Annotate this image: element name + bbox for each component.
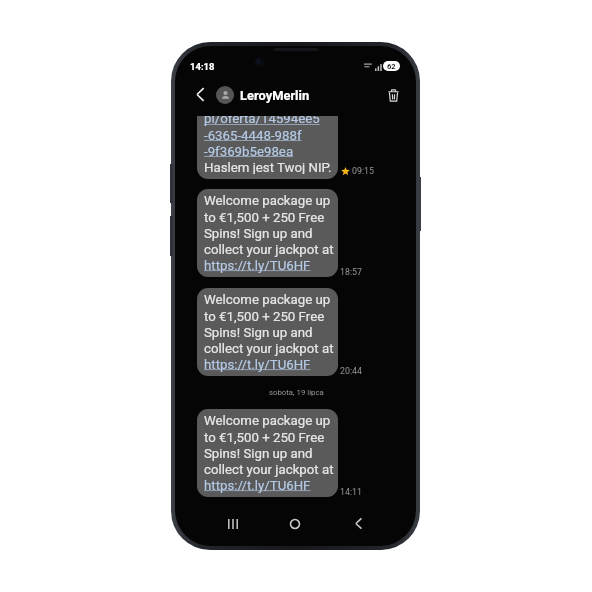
button[interactable]: Welcome package up to €1,500 + 250 Free … bbox=[197, 409, 338, 497]
staticText: sobota, 19 lipca bbox=[269, 388, 324, 397]
staticText: 18:57 bbox=[340, 267, 362, 277]
staticText: Welcome package up to €1,500 + 250 Free … bbox=[204, 413, 334, 493]
staticText: pl/oferta/14594ee5 -6365-4448-988f -9f36… bbox=[204, 116, 332, 174]
staticText: LeroyMerlin bbox=[240, 88, 310, 103]
button[interactable]: pl/oferta/14594ee5 -6365-4448-988f -9f36… bbox=[197, 116, 338, 179]
button[interactable]: Back bbox=[190, 84, 211, 105]
button[interactable]: Welcome package up to €1,500 + 250 Free … bbox=[197, 288, 338, 376]
staticText: Welcome package up to €1,500 + 250 Free … bbox=[204, 193, 334, 273]
button[interactable]: Back bbox=[349, 514, 368, 533]
button[interactable]: Delete conversation bbox=[382, 84, 404, 106]
staticText: Welcome package up to €1,500 + 250 Free … bbox=[204, 292, 334, 372]
button[interactable]: Welcome package up to €1,500 + 250 Free … bbox=[197, 189, 338, 277]
staticText: 14:11 bbox=[340, 487, 362, 497]
staticText: 14:18 bbox=[190, 61, 215, 72]
button[interactable]: Recent apps bbox=[223, 514, 242, 533]
button[interactable]: Home bbox=[285, 514, 304, 533]
staticText: 62 bbox=[387, 62, 396, 71]
staticText: 20:44 bbox=[340, 366, 362, 376]
staticText: 09:15 bbox=[352, 166, 374, 176]
